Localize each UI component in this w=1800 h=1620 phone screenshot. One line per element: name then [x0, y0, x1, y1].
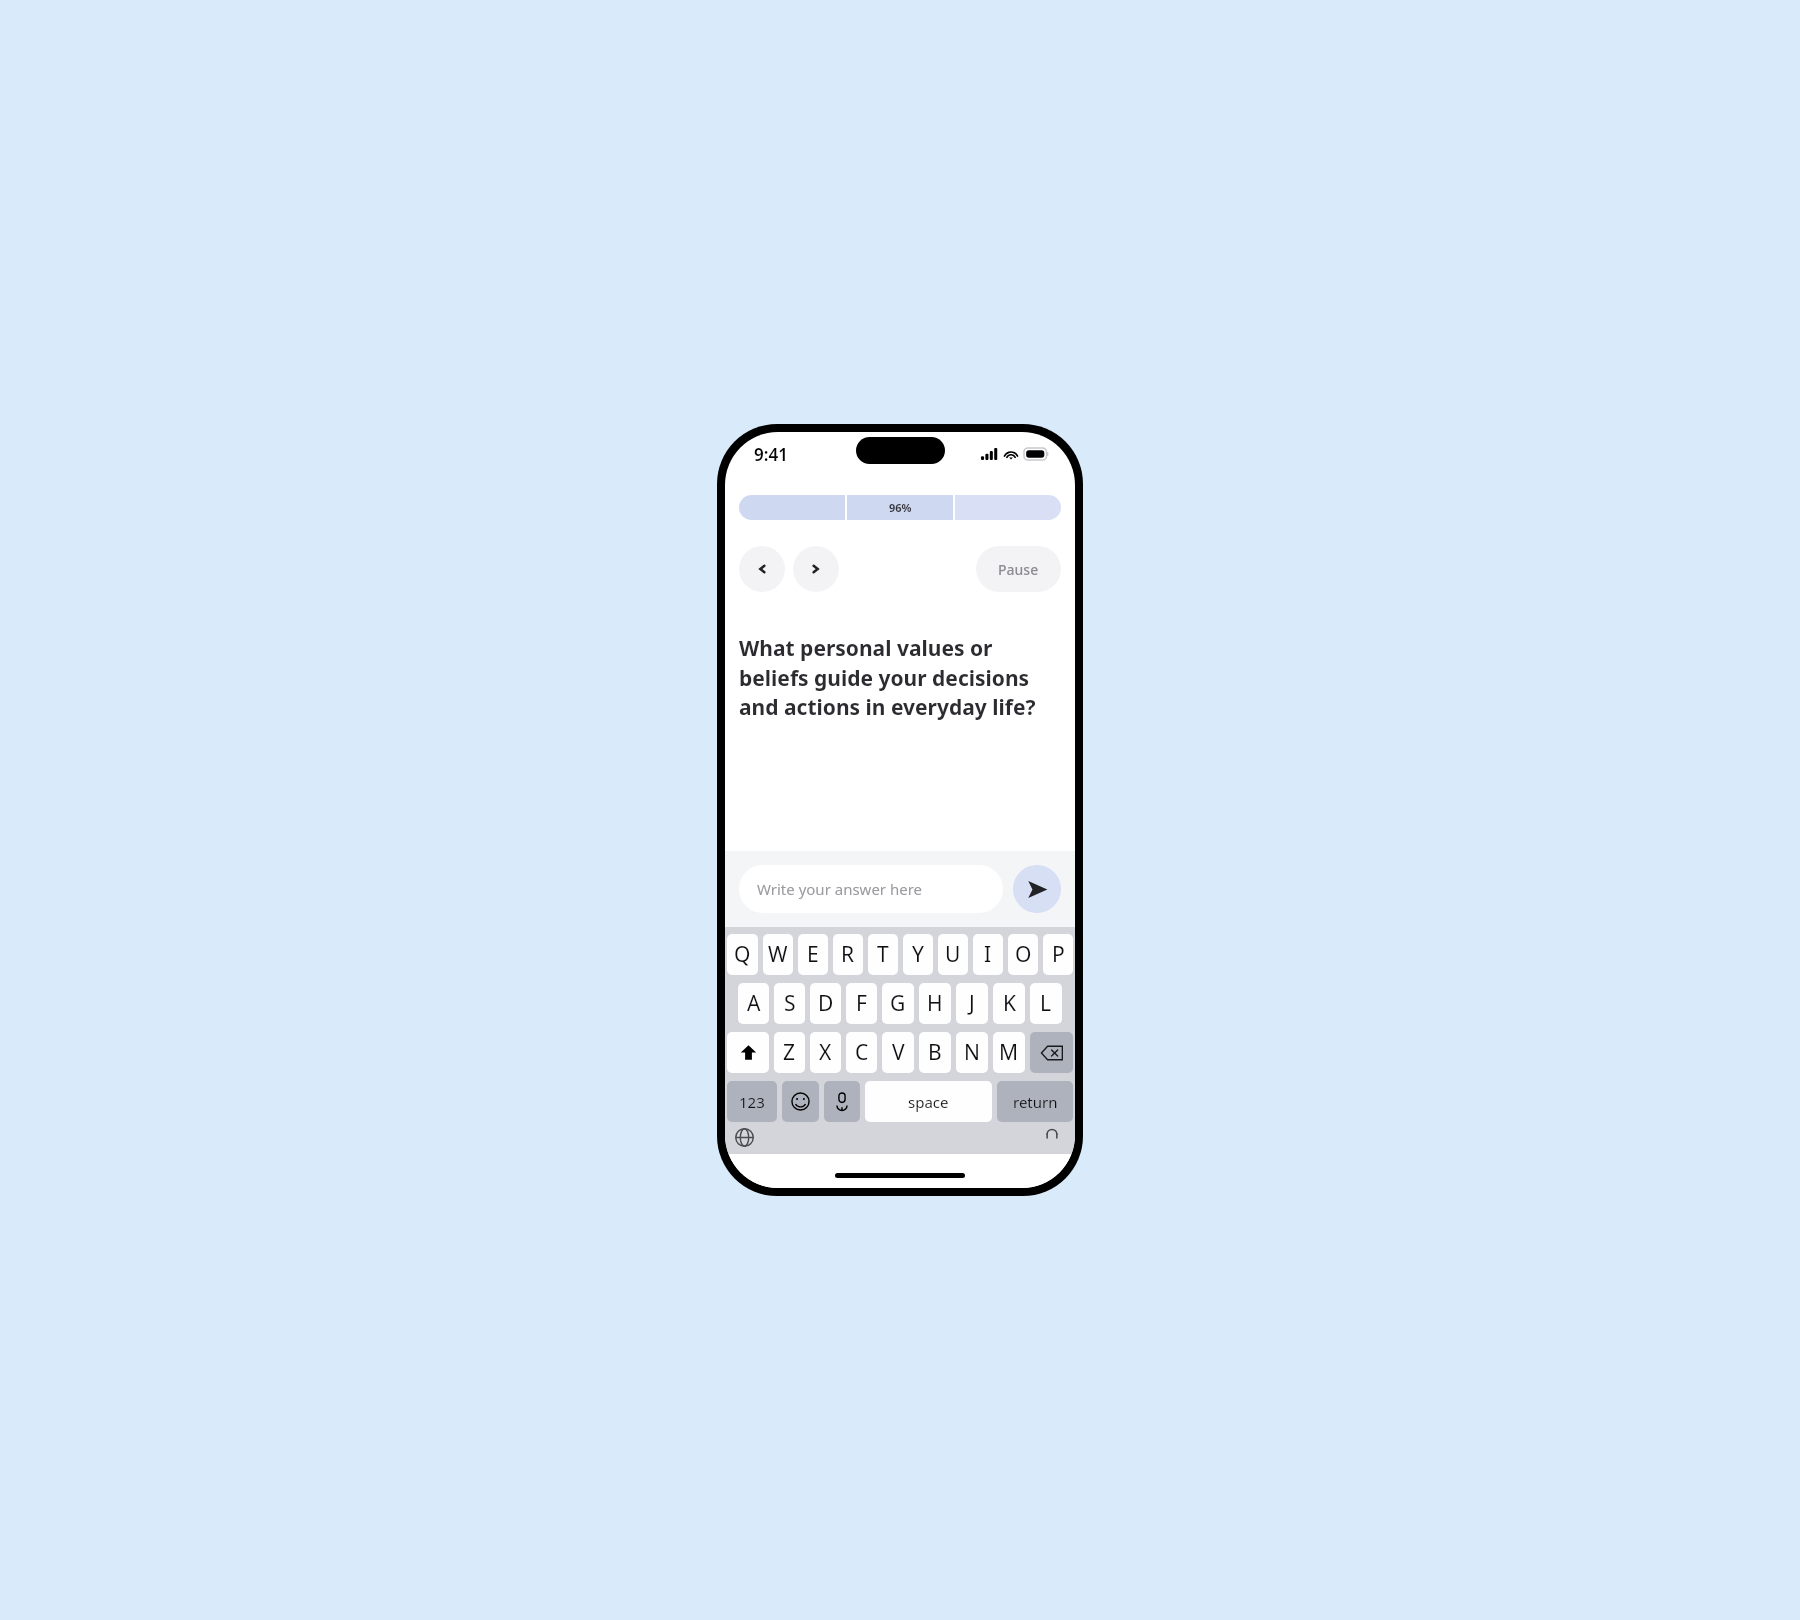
button[interactable]: H: [919, 983, 951, 1024]
button[interactable]: return: [997, 1081, 1073, 1122]
staticText: T: [877, 940, 889, 969]
button[interactable]: K: [993, 983, 1025, 1024]
button[interactable]: E: [798, 934, 828, 975]
button[interactable]: S: [774, 983, 805, 1024]
button[interactable]: Y: [903, 934, 933, 975]
staticText: D: [818, 989, 834, 1018]
button[interactable]: Send: [1013, 865, 1061, 913]
staticText: 96%: [889, 500, 912, 515]
staticText: M: [999, 1038, 1019, 1067]
button[interactable]: Next: [793, 546, 839, 592]
button[interactable]: L: [1030, 983, 1062, 1024]
button[interactable]: Previous: [739, 546, 785, 592]
button[interactable]: X: [810, 1032, 841, 1073]
button[interactable]: V: [882, 1032, 914, 1073]
button[interactable]: Hide keyboard: [1043, 1128, 1061, 1142]
staticText: O: [1015, 940, 1032, 969]
staticText: Y: [912, 940, 924, 969]
button[interactable]: Pause: [976, 546, 1061, 592]
staticText: space: [908, 1092, 949, 1112]
staticText: return: [1013, 1092, 1058, 1112]
staticText: J: [969, 989, 975, 1018]
button[interactable]: G: [882, 983, 914, 1024]
staticText: B: [928, 1038, 942, 1067]
staticText: K: [1003, 989, 1016, 1018]
button[interactable]: Z: [774, 1032, 805, 1073]
staticText: 9:41: [754, 443, 788, 466]
staticText: What personal values or beliefs guide yo…: [739, 634, 1049, 721]
button[interactable]: F: [846, 983, 877, 1024]
staticText: X: [819, 1038, 832, 1067]
staticText: V: [892, 1038, 905, 1067]
staticText: C: [855, 1038, 869, 1067]
button[interactable]: Q: [727, 934, 758, 975]
staticText: Z: [783, 1038, 796, 1067]
staticText: S: [784, 989, 796, 1018]
button[interactable]: Backspace: [1030, 1032, 1073, 1073]
button[interactable]: Write your answer here: [739, 865, 1003, 913]
staticText: W: [768, 940, 788, 969]
button[interactable]: I: [973, 934, 1003, 975]
staticText: N: [964, 1038, 980, 1067]
button[interactable]: Dictation: [824, 1081, 860, 1122]
button[interactable]: J: [956, 983, 988, 1024]
button[interactable]: P: [1043, 934, 1073, 975]
button[interactable]: space: [865, 1081, 992, 1122]
button[interactable]: C: [846, 1032, 877, 1073]
staticText: E: [807, 940, 819, 969]
button[interactable]: T: [868, 934, 898, 975]
button[interactable]: Emoji: [782, 1081, 819, 1122]
staticText: Q: [734, 940, 751, 969]
button[interactable]: B: [919, 1032, 951, 1073]
staticText: 123: [739, 1092, 765, 1112]
staticText: Write your answer here: [757, 879, 923, 899]
staticText: L: [1040, 989, 1052, 1018]
staticText: F: [856, 989, 867, 1018]
staticText: Pause: [998, 560, 1039, 579]
button[interactable]: R: [833, 934, 863, 975]
button[interactable]: U: [938, 934, 968, 975]
button[interactable]: A: [738, 983, 769, 1024]
staticText: R: [841, 940, 855, 969]
button[interactable]: M: [993, 1032, 1025, 1073]
staticText: A: [747, 989, 761, 1018]
button[interactable]: D: [810, 983, 841, 1024]
staticText: P: [1052, 940, 1065, 969]
button[interactable]: Change keyboard: [735, 1128, 754, 1147]
staticText: U: [945, 940, 961, 969]
button[interactable]: N: [956, 1032, 988, 1073]
button[interactable]: O: [1008, 934, 1038, 975]
button[interactable]: 123: [727, 1081, 777, 1122]
staticText: H: [927, 989, 943, 1018]
staticText: G: [890, 989, 906, 1018]
staticText: I: [984, 940, 992, 969]
button[interactable]: Shift: [727, 1032, 769, 1073]
button[interactable]: W: [763, 934, 793, 975]
